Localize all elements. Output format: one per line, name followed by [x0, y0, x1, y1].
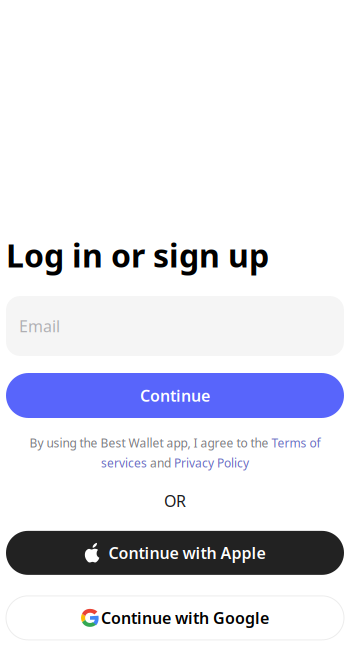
staticText: Continue [140, 385, 210, 406]
button[interactable]: Terms of [271, 435, 320, 451]
staticText: OR [164, 490, 186, 511]
staticText: and [147, 455, 174, 471]
button[interactable]: Continue with Apple [6, 531, 344, 575]
staticText: Continue with Apple [108, 542, 265, 563]
staticText: Terms of [271, 435, 320, 451]
staticText: Privacy Policy [174, 455, 249, 471]
button[interactable]: Continue with Google [6, 596, 344, 640]
staticText: Log in or sign up [6, 234, 269, 276]
staticText: services [101, 455, 147, 471]
button[interactable]: services [101, 455, 147, 471]
button[interactable]: Email [6, 296, 344, 356]
button[interactable]: Continue [6, 373, 344, 418]
staticText: By using the Best Wallet app, I agree to… [29, 435, 271, 451]
staticText: Email [19, 315, 60, 337]
button[interactable]: Privacy Policy [174, 455, 249, 471]
staticText: Continue with Google [101, 607, 269, 628]
